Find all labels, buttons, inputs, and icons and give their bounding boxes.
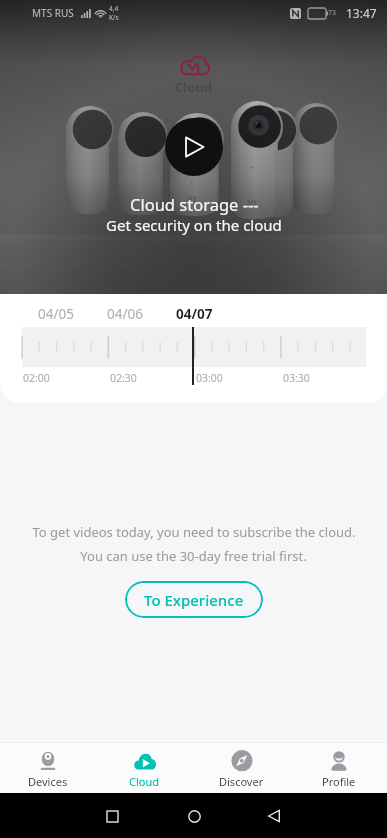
staticText: Cloud bbox=[175, 78, 213, 96]
button[interactable]: Recents bbox=[92, 796, 132, 836]
staticText: 04/07 bbox=[176, 305, 213, 323]
button[interactable]: 04/05 bbox=[35, 303, 77, 325]
staticText: 02:00 bbox=[23, 371, 50, 385]
button[interactable]: Devices bbox=[0, 743, 96, 793]
staticText: Cloud storage --- bbox=[130, 193, 259, 215]
staticText: K/s bbox=[109, 13, 119, 22]
button[interactable]: Play bbox=[165, 118, 223, 176]
staticText: 04/05 bbox=[38, 305, 74, 323]
staticText: To get videos today, you need to subscri… bbox=[32, 523, 356, 541]
staticText: 03:30 bbox=[283, 371, 310, 385]
staticText: 04/06 bbox=[107, 305, 143, 323]
staticText: Get security on the cloud bbox=[106, 215, 282, 235]
staticText: To Experience bbox=[144, 590, 244, 610]
staticText: 03:00 bbox=[196, 371, 223, 385]
staticText: Cloud bbox=[129, 774, 160, 789]
button[interactable]: Home bbox=[174, 796, 214, 836]
button[interactable]: Cloud bbox=[96, 743, 193, 793]
staticText: 73 bbox=[328, 8, 337, 18]
staticText: Profile bbox=[322, 774, 356, 789]
staticText: You can use the 30-day free trial first. bbox=[80, 547, 307, 565]
staticText: 4,4 bbox=[109, 4, 119, 13]
staticText: MTS RUS bbox=[32, 6, 74, 20]
button[interactable]: Back bbox=[254, 796, 294, 836]
button[interactable]: To Experience bbox=[125, 581, 263, 618]
button[interactable]: Profile bbox=[290, 743, 387, 793]
button[interactable]: 04/06 bbox=[104, 303, 146, 325]
staticText: 13:47 bbox=[346, 5, 377, 21]
staticText: Discover bbox=[219, 774, 264, 789]
button[interactable]: Discover bbox=[193, 743, 290, 793]
button[interactable]: 04/07 bbox=[173, 303, 216, 325]
staticText: 02:30 bbox=[110, 371, 137, 385]
staticText: Devices bbox=[28, 774, 68, 789]
